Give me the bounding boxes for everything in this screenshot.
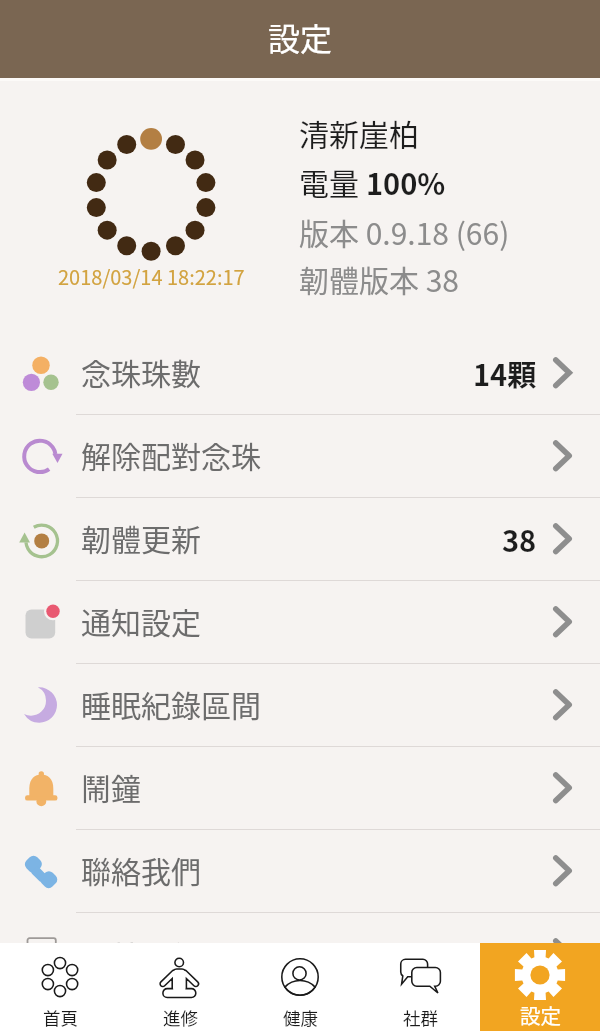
button[interactable]: 睡眠紀錄區間	[0, 664, 600, 747]
staticText: 14顆	[473, 352, 537, 394]
staticText: 韌體更新	[81, 516, 201, 559]
button[interactable]: 聯絡我們	[0, 830, 600, 913]
staticText: 念珠珠數	[81, 350, 201, 393]
staticText: 健康	[283, 1005, 318, 1030]
button[interactable]: 念珠珠數	[0, 332, 600, 415]
button[interactable]: 進修	[120, 943, 240, 1031]
staticText: 進修	[163, 1005, 198, 1030]
staticText: 38	[502, 518, 537, 560]
staticText: 解除配對念珠	[81, 433, 261, 476]
button[interactable]: 韌體更新	[0, 498, 600, 581]
staticText: 100%	[366, 161, 446, 203]
staticText: 韌體版本 38	[299, 257, 460, 300]
button[interactable]: 健康	[240, 943, 360, 1031]
staticText: 清新崖柏	[299, 111, 419, 154]
staticText: 關於我們	[81, 933, 201, 976]
staticText: 首頁	[43, 1005, 78, 1030]
button[interactable]: 首頁	[0, 943, 120, 1031]
staticText: 版本 0.9.18 (66)	[299, 210, 510, 253]
button[interactable]: 設定	[480, 943, 600, 1031]
button[interactable]: 鬧鐘	[0, 747, 600, 830]
staticText: 2018/03/14 18:22:17	[58, 262, 245, 291]
staticText: 社群	[403, 1005, 438, 1030]
staticText: 設定	[268, 14, 333, 60]
button[interactable]: 解除配對念珠	[0, 415, 600, 498]
button[interactable]: 社群	[360, 943, 480, 1031]
staticText: 鬧鐘	[81, 765, 141, 808]
staticText: 睡眠紀錄區間	[81, 682, 261, 725]
staticText: 通知設定	[81, 599, 201, 642]
button[interactable]: 關於我們	[0, 913, 600, 996]
button[interactable]: 通知設定	[0, 581, 600, 664]
staticText: 設定	[520, 1000, 561, 1030]
staticText: 電量	[299, 160, 366, 203]
staticText: 聯絡我們	[81, 848, 201, 891]
